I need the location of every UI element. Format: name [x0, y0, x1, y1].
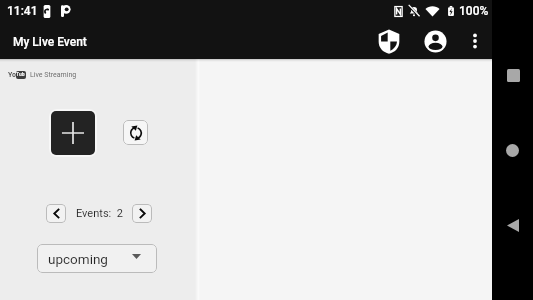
button[interactable]: Previous [46, 204, 66, 223]
button[interactable]: Recent apps [496, 58, 530, 92]
staticText: My Live Event [13, 35, 87, 49]
staticText: You [8, 71, 20, 79]
staticText: upcoming [48, 251, 108, 267]
staticText: Tube [16, 71, 26, 79]
staticText: Events: 2 [76, 207, 123, 220]
staticText: 11:41 [7, 4, 38, 18]
button[interactable]: Account [417, 23, 453, 59]
button[interactable]: New event [51, 111, 95, 155]
button[interactable]: More options [457, 23, 493, 59]
staticText: Live Streaming [30, 71, 77, 79]
button[interactable]: Back [496, 208, 530, 242]
button[interactable]: upcoming [37, 244, 157, 273]
staticText: 100% [459, 4, 489, 18]
button[interactable]: Security [371, 23, 407, 59]
button[interactable]: Home [495, 133, 529, 167]
button[interactable]: Refresh [123, 120, 148, 145]
button[interactable]: Next [132, 204, 152, 223]
